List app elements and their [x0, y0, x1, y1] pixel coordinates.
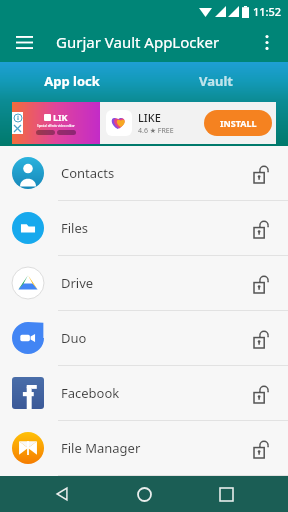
- button[interactable]: File Manager: [0, 421, 288, 475]
- button[interactable]: Lock Drive: [248, 270, 274, 296]
- button[interactable]: Contacts: [0, 146, 288, 200]
- staticText: Vault: [199, 72, 233, 90]
- staticText: 4.6 ★ FREE: [138, 126, 174, 136]
- button[interactable]: App lock: [0, 62, 144, 100]
- button[interactable]: Files: [0, 201, 288, 255]
- button[interactable]: Duo: [0, 311, 288, 365]
- staticText: INSTALL: [220, 117, 257, 129]
- button[interactable]: Drive: [0, 256, 288, 310]
- button[interactable]: Lock Facebook: [248, 380, 274, 406]
- button[interactable]: More options: [252, 27, 282, 57]
- staticText: LIK: [53, 111, 68, 123]
- button[interactable]: INSTALL: [204, 110, 272, 136]
- button[interactable]: Vault: [144, 62, 288, 100]
- button[interactable]: Recents: [206, 476, 246, 512]
- staticText: Duo: [61, 329, 248, 347]
- staticText: Files: [61, 219, 248, 237]
- staticText: File Manager: [61, 439, 248, 457]
- button[interactable]: Facebook: [0, 366, 288, 420]
- button[interactable]: Back: [42, 476, 82, 512]
- staticText: Gurjar Vault AppLocker: [56, 32, 220, 52]
- staticText: 11:52: [253, 4, 282, 19]
- button[interactable]: Lock Duo: [248, 325, 274, 351]
- staticText: Contacts: [61, 164, 248, 182]
- staticText: Special effects video editor: [37, 124, 75, 128]
- button[interactable]: Lock Contacts: [248, 160, 274, 186]
- button[interactable]: Lock Files: [248, 215, 274, 241]
- button[interactable]: Home: [124, 476, 164, 512]
- staticText: Facebook: [61, 384, 248, 402]
- staticText: LIKE: [138, 110, 161, 125]
- button[interactable]: LIK: [12, 102, 276, 144]
- button[interactable]: Lock File Manager: [248, 435, 274, 461]
- button[interactable]: Menu: [8, 26, 40, 58]
- staticText: Drive: [61, 274, 248, 292]
- staticText: App lock: [44, 72, 100, 90]
